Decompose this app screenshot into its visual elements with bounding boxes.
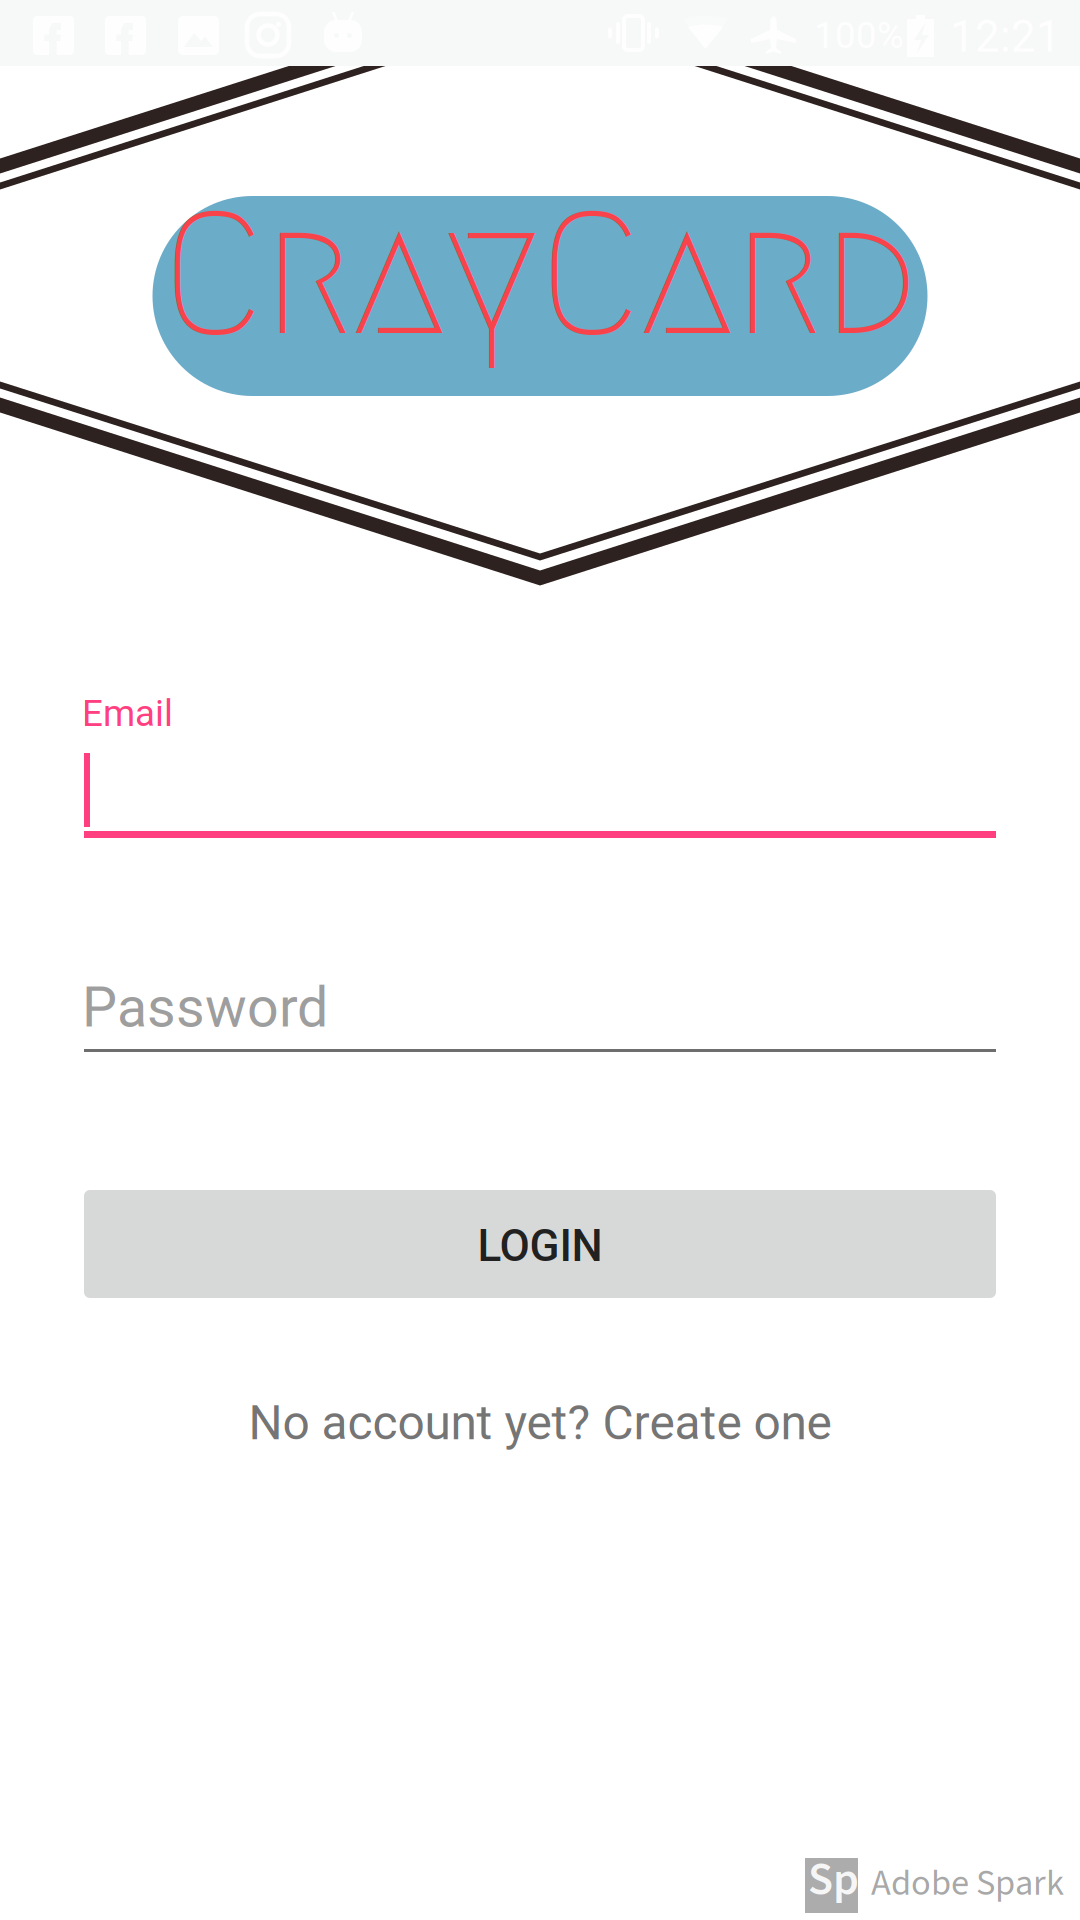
button[interactable]: Password [84,965,996,1052]
staticText: CrayCard [161,180,918,368]
staticText: No account yet? Create one [248,1395,831,1451]
button[interactable]: LOGIN [84,1190,996,1298]
button[interactable]: No account yet? Create one [0,1380,1080,1466]
staticText: Email [82,692,173,735]
staticText: Adobe Spark [871,1858,1064,1909]
staticText: LOGIN [477,1220,602,1272]
staticText: Sp [808,1847,859,1912]
button[interactable]: Email [84,690,996,838]
staticText: Password [82,975,328,1040]
